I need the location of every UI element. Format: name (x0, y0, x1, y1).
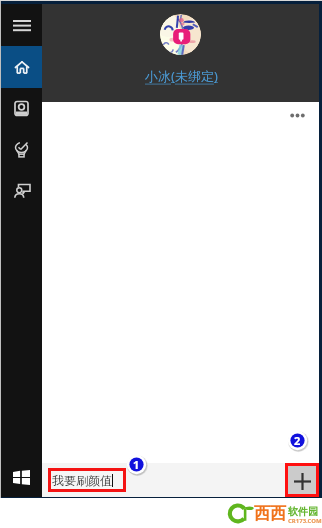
staticText: 小冰(未绑定) (145, 67, 218, 85)
button[interactable]: Feedback (1, 170, 42, 211)
staticText: 我要刷颜值 (52, 473, 112, 488)
staticText: 西西 (254, 504, 286, 524)
button[interactable]: Start (1, 457, 42, 497)
button[interactable]: More (290, 109, 305, 122)
button[interactable]: 我要刷颜值 (51, 471, 123, 489)
button[interactable]: 小冰(未绑定) (143, 67, 220, 85)
staticText: 软件园 (288, 505, 318, 518)
button[interactable]: Home (1, 46, 42, 88)
staticText: 1 (133, 457, 140, 472)
button[interactable]: Photos (1, 88, 42, 129)
staticText: 2 (294, 433, 301, 448)
staticText: CR173.COM (288, 517, 322, 525)
button[interactable]: Avatar (160, 14, 201, 55)
button[interactable]: Menu (1, 4, 42, 46)
button[interactable]: Skills (1, 129, 42, 170)
button[interactable]: Add (288, 466, 316, 494)
